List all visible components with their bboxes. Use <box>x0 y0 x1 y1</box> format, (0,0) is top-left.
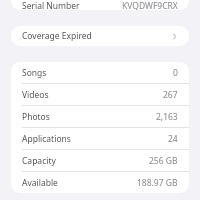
staticText: 24 <box>168 133 178 145</box>
staticText: 256 GB <box>149 155 178 167</box>
staticText: 188.97 GB <box>137 177 178 189</box>
staticText: Capacity <box>22 155 56 167</box>
other: Coverage details <box>170 32 179 41</box>
button[interactable]: Capacity <box>11 150 189 171</box>
staticText: Coverage Expired <box>22 30 92 42</box>
staticText: 267 <box>163 89 178 101</box>
staticText: Songs <box>22 67 47 79</box>
staticText: Videos <box>22 89 49 101</box>
staticText: Applications <box>22 133 71 145</box>
button[interactable]: Available <box>11 172 189 193</box>
button[interactable]: Videos <box>11 84 189 105</box>
button[interactable]: Photos <box>11 106 189 127</box>
staticText: KVQDWF9CRX <box>122 0 178 10</box>
button[interactable]: Songs <box>11 62 189 83</box>
staticText: 2,163 <box>156 111 178 123</box>
staticText: Available <box>22 177 58 189</box>
staticText: 0 <box>173 67 178 79</box>
staticText: Photos <box>22 111 50 123</box>
staticText: Serial Number <box>22 0 80 10</box>
button[interactable]: Applications <box>11 128 189 149</box>
button[interactable]: Serial Number <box>22 0 178 10</box>
button[interactable]: Coverage Expired <box>11 26 189 46</box>
